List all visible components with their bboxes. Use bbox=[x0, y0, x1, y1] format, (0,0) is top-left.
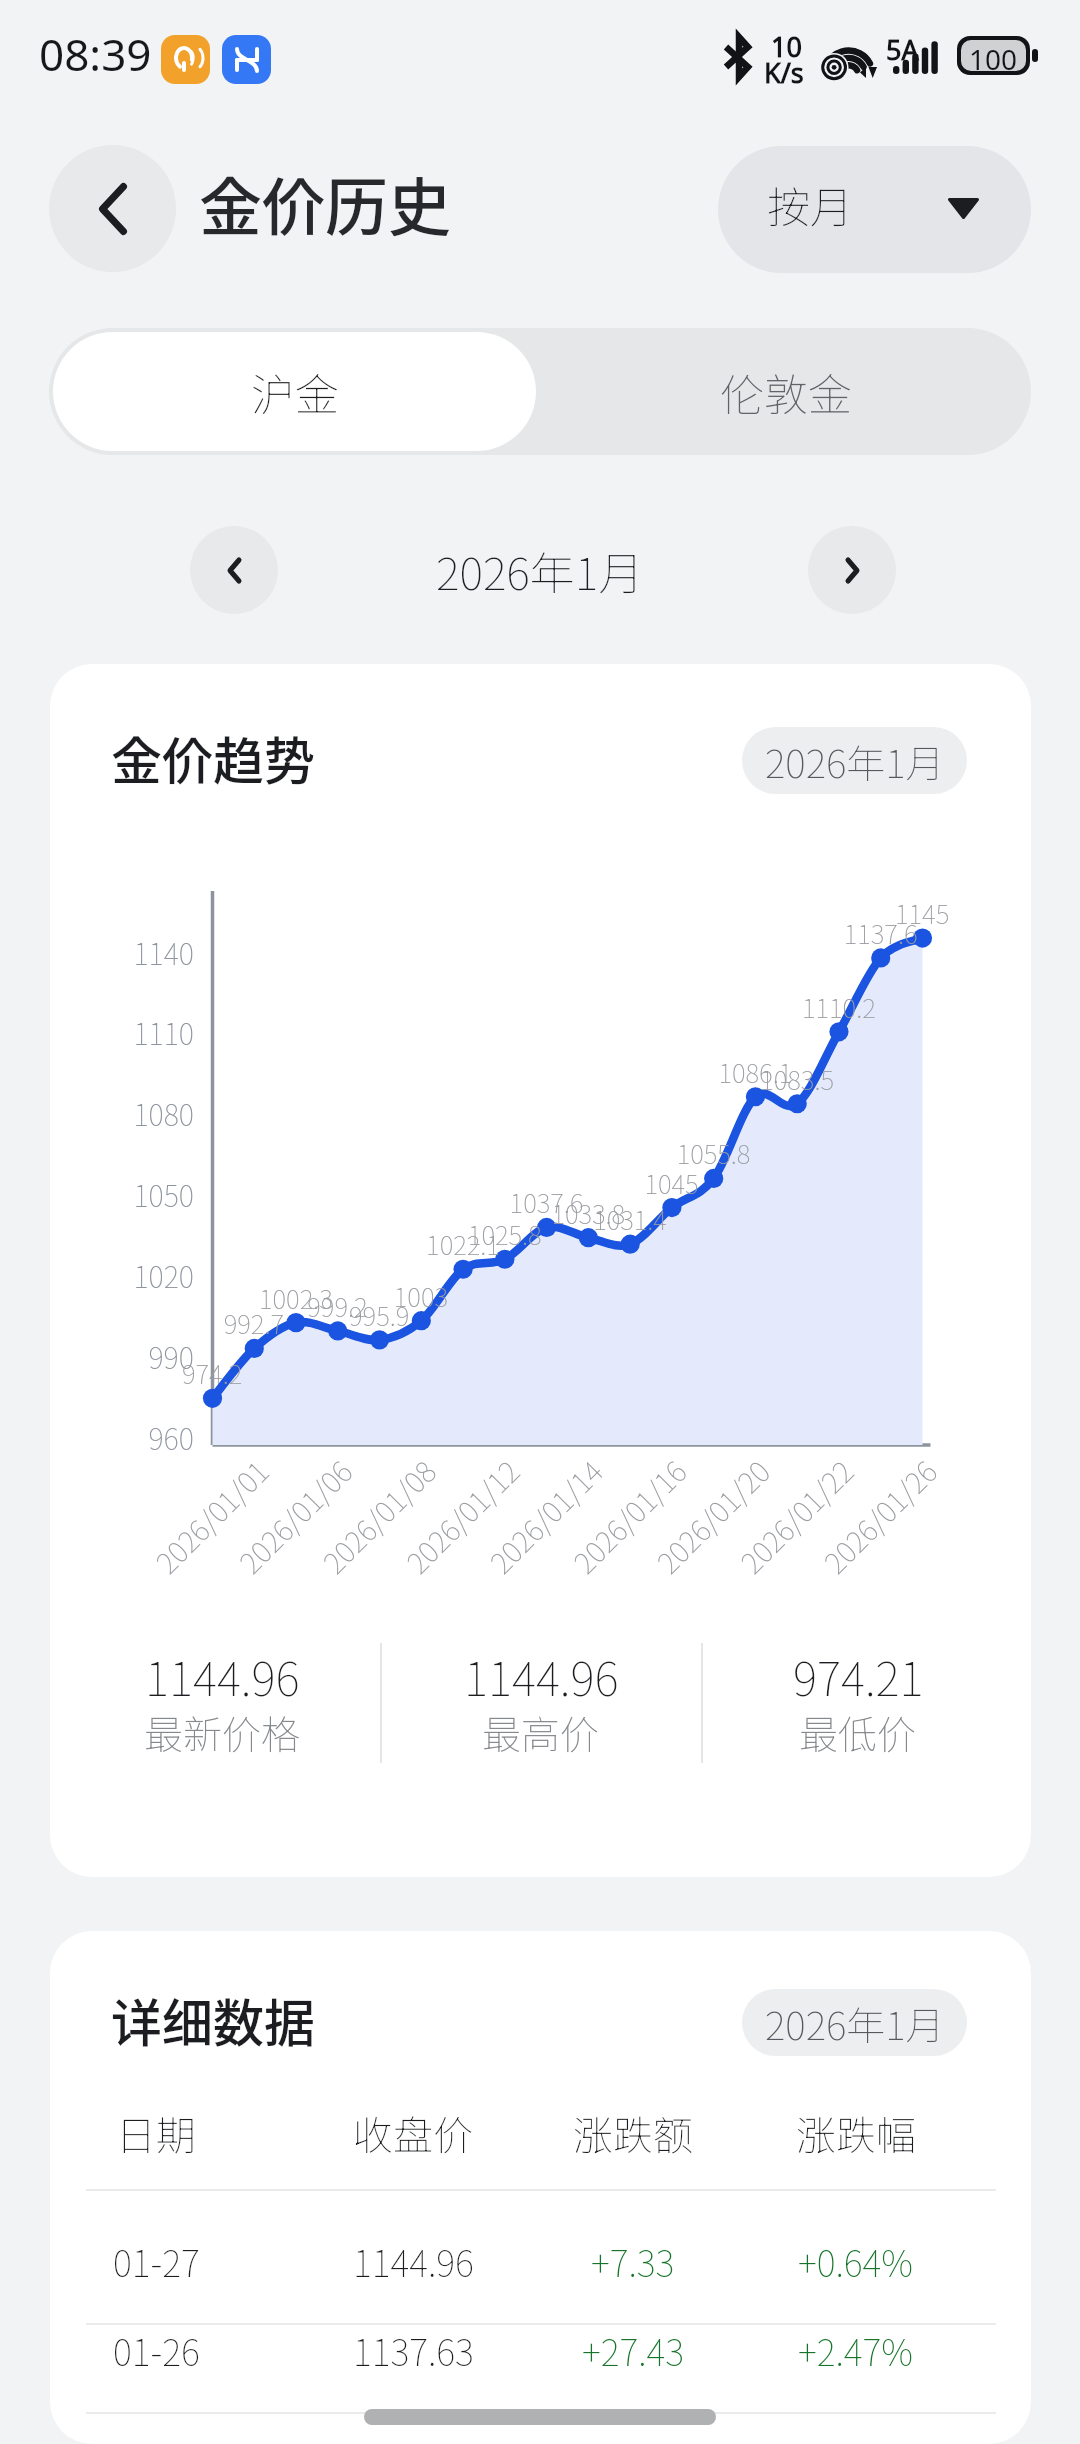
staticText: 2026年1月 bbox=[765, 1995, 945, 2051]
staticText: 最低价 bbox=[799, 1704, 917, 1760]
staticText: 974.21 bbox=[793, 1643, 924, 1710]
button[interactable] bbox=[86, 2213, 996, 2302]
staticText: +7.33 bbox=[591, 2235, 675, 2287]
button[interactable]: Next month bbox=[808, 526, 896, 614]
staticText: 1137.63 bbox=[353, 2324, 474, 2376]
staticText: 08:39 bbox=[39, 24, 152, 84]
staticText: 沪金 bbox=[251, 360, 339, 424]
staticText: 2026年1月 bbox=[436, 538, 644, 603]
staticText: 01-26 bbox=[113, 2324, 200, 2376]
staticText: +27.43 bbox=[582, 2324, 685, 2376]
button[interactable]: 按月 bbox=[718, 146, 1031, 273]
staticText: K/s bbox=[764, 54, 804, 91]
button[interactable]: Back bbox=[49, 145, 176, 272]
staticText: +2.47% bbox=[798, 2324, 914, 2376]
button[interactable] bbox=[86, 2302, 996, 2391]
staticText: 10 bbox=[771, 28, 802, 65]
button[interactable]: 沪金 bbox=[53, 332, 536, 451]
staticText: 涨跌额 bbox=[573, 2104, 693, 2162]
staticText: 最新价格 bbox=[144, 1704, 301, 1760]
staticText: 涨跌幅 bbox=[796, 2104, 916, 2162]
staticText: 5A bbox=[886, 31, 919, 68]
staticText: 1144.96 bbox=[464, 1643, 619, 1710]
staticText: 详细数据 bbox=[111, 1983, 316, 2057]
button[interactable]: 伦敦金 bbox=[540, 328, 1031, 455]
staticText: 日期 bbox=[116, 2104, 196, 2162]
staticText: 2026年1月 bbox=[765, 733, 945, 789]
staticText: 01-27 bbox=[113, 2235, 200, 2287]
staticText: 1144.96 bbox=[145, 1643, 300, 1710]
button[interactable]: Previous month bbox=[190, 526, 278, 614]
staticText: +0.64% bbox=[798, 2235, 914, 2287]
staticText: 最高价 bbox=[482, 1704, 600, 1760]
staticText: 金价趋势 bbox=[111, 721, 316, 795]
staticText: 按月 bbox=[767, 173, 853, 235]
staticText: 100 bbox=[969, 40, 1018, 71]
staticText: 收盘价 bbox=[353, 2104, 473, 2162]
staticText: 金价历史 bbox=[199, 157, 451, 248]
staticText: 伦敦金 bbox=[720, 360, 852, 424]
staticText: 1144.96 bbox=[353, 2235, 474, 2287]
